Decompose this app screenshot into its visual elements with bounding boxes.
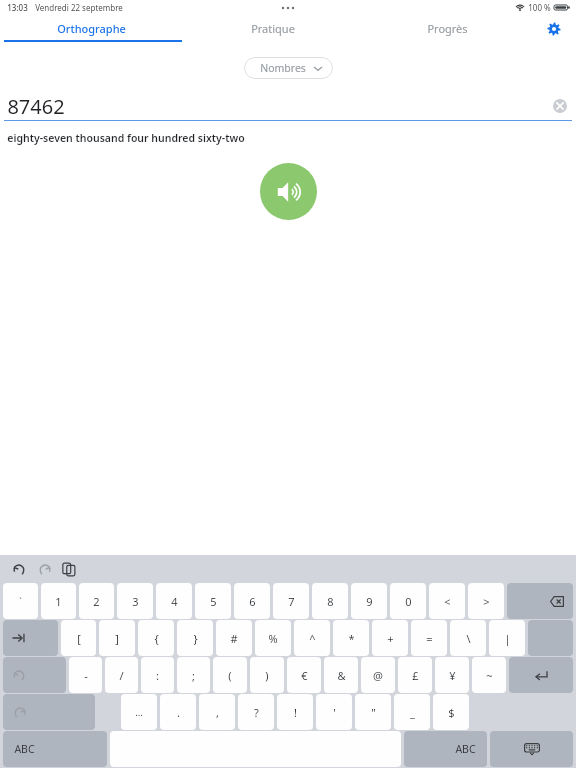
button[interactable]: Progrès	[364, 15, 531, 42]
button[interactable]: ;	[177, 657, 210, 693]
staticText: Progrès	[427, 21, 468, 36]
button[interactable]: 7	[273, 583, 309, 619]
button[interactable]: #	[216, 620, 252, 656]
button[interactable]: ,	[199, 694, 235, 730]
button[interactable]: 8	[312, 583, 348, 619]
staticText: )	[265, 668, 269, 683]
button[interactable]: `	[3, 583, 38, 619]
button[interactable]: ^	[294, 620, 330, 656]
button[interactable]: £	[398, 657, 432, 693]
staticText: 100 %	[528, 2, 551, 13]
button[interactable]: |	[489, 620, 525, 656]
button[interactable]: 6	[234, 583, 270, 619]
staticText: (	[228, 668, 232, 683]
button[interactable]: Clear text	[553, 99, 567, 113]
staticText: Vendredi 22 septembre	[35, 2, 123, 13]
button[interactable]: …	[121, 694, 157, 730]
button[interactable]: Nombres	[244, 57, 333, 79]
button[interactable]: [	[61, 620, 96, 656]
button[interactable]: Listen to pronunciation	[260, 163, 317, 220]
staticText: ¥	[449, 668, 456, 683]
button[interactable]: Orthographe	[0, 15, 182, 42]
staticText: 6	[249, 594, 256, 609]
button[interactable]: $	[433, 694, 469, 730]
button[interactable]: Settings	[531, 15, 576, 42]
button[interactable]: !	[277, 694, 313, 730]
button[interactable]: ABC	[3, 731, 107, 767]
button[interactable]: Tab	[3, 620, 58, 656]
button[interactable]: Undo	[11, 561, 27, 577]
staticText: ]	[115, 631, 119, 646]
staticText: @	[373, 668, 383, 683]
staticText: €	[301, 668, 308, 683]
staticText: &	[337, 668, 346, 683]
button[interactable]: Shift	[3, 657, 66, 693]
staticText: ABC	[14, 742, 35, 756]
staticText: :	[156, 668, 159, 683]
button[interactable]: Backspace	[507, 583, 573, 619]
button[interactable]: %	[255, 620, 291, 656]
button[interactable]: /	[105, 657, 138, 693]
button[interactable]: =	[411, 620, 447, 656]
button[interactable]: (	[213, 657, 247, 693]
button[interactable]: }	[177, 620, 213, 656]
button[interactable]: :	[141, 657, 174, 693]
staticText: |	[504, 631, 511, 646]
button[interactable]: Return	[509, 657, 573, 693]
staticText: 1	[55, 594, 62, 609]
button[interactable]: .	[160, 694, 196, 730]
button[interactable]: *	[333, 620, 369, 656]
staticText: !	[294, 705, 297, 720]
staticText: ?	[254, 705, 259, 720]
button[interactable]: 5	[195, 583, 231, 619]
button[interactable]: "	[355, 694, 391, 730]
staticText: *	[348, 631, 355, 646]
button[interactable]: )	[250, 657, 284, 693]
button[interactable]: Paste	[61, 561, 77, 577]
button[interactable]: ?	[238, 694, 274, 730]
button[interactable]: Redo	[36, 561, 52, 577]
staticText: 7	[288, 594, 295, 609]
button[interactable]: _	[394, 694, 430, 730]
button[interactable]: ]	[99, 620, 135, 656]
staticText: 13:03	[7, 2, 28, 13]
button[interactable]: ~	[472, 657, 506, 693]
staticText: ;	[192, 668, 195, 683]
staticText: /	[119, 668, 124, 683]
button[interactable]: +	[372, 620, 408, 656]
button[interactable]: €	[287, 657, 321, 693]
button[interactable]: ABC	[404, 731, 487, 767]
button[interactable]: -	[69, 657, 102, 693]
button[interactable]: 4	[156, 583, 192, 619]
button[interactable]: {	[138, 620, 174, 656]
button[interactable]: 2	[79, 583, 114, 619]
staticText: 2	[93, 594, 100, 609]
button[interactable]: ¥	[435, 657, 469, 693]
button[interactable]: 9	[351, 583, 387, 619]
button[interactable]: @	[361, 657, 395, 693]
button[interactable]: 1	[41, 583, 76, 619]
staticText: .	[177, 705, 180, 720]
button[interactable]: &	[324, 657, 358, 693]
staticText: Orthographe	[57, 21, 126, 36]
button[interactable]: <	[429, 583, 465, 619]
button[interactable]: '	[316, 694, 352, 730]
staticText: …	[135, 706, 143, 719]
staticText: +	[387, 631, 394, 646]
button[interactable]: Hide keyboard	[490, 731, 573, 767]
button[interactable]: >	[468, 583, 504, 619]
staticText: =	[426, 631, 433, 646]
button[interactable]: \	[450, 620, 486, 656]
staticText: }	[193, 631, 198, 646]
button[interactable]: 0	[390, 583, 426, 619]
staticText: `	[19, 595, 22, 607]
button[interactable]: Pratique	[182, 15, 364, 42]
staticText: eighty-seven thousand four hundred sixty…	[7, 131, 245, 145]
button[interactable]: 3	[117, 583, 153, 619]
staticText: '	[333, 705, 336, 720]
staticText: {	[154, 631, 159, 646]
staticText: _	[410, 705, 415, 720]
